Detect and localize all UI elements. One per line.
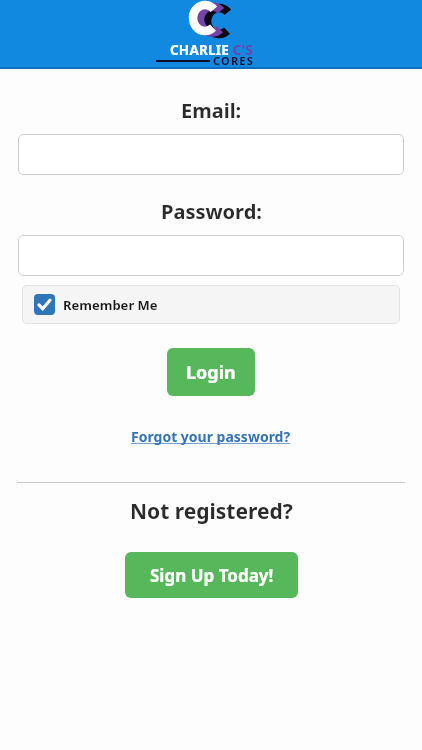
staticText: Sign Up Today! — [150, 564, 274, 587]
staticText: CHARLIE C'S — [170, 41, 253, 59]
staticText: CORES — [213, 53, 254, 68]
staticText: Not registered? — [130, 497, 293, 526]
button[interactable]: Remember Me — [22, 285, 400, 324]
staticText: Email: — [181, 97, 242, 124]
button[interactable] — [18, 235, 404, 276]
staticText: Login — [186, 360, 236, 385]
button[interactable] — [18, 134, 404, 175]
button[interactable]: Login — [167, 348, 255, 396]
staticText: Password: — [161, 198, 262, 225]
staticText: Forgot your password? — [131, 427, 291, 446]
button[interactable]: Forgot your password? — [131, 427, 291, 446]
staticText: Remember Me — [63, 296, 158, 314]
button[interactable]: Sign Up Today! — [125, 552, 298, 598]
